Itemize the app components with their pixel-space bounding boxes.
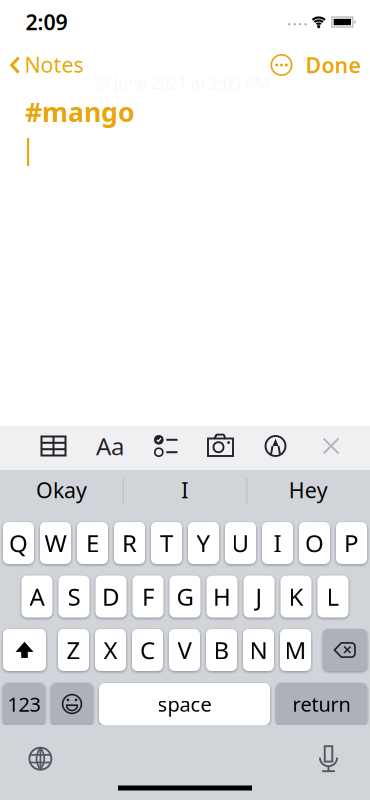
button[interactable]: Checklist xyxy=(154,435,178,457)
staticText: Notes xyxy=(24,50,83,79)
button[interactable]: space xyxy=(99,683,270,725)
staticText: H xyxy=(213,581,231,612)
button[interactable]: X xyxy=(95,629,126,671)
staticText: 2:09 xyxy=(25,8,67,36)
staticText: R xyxy=(122,527,137,559)
button[interactable]: I xyxy=(262,522,293,564)
staticText: U xyxy=(231,527,249,559)
button[interactable]: Format text xyxy=(96,430,124,462)
button[interactable]: P xyxy=(336,522,367,564)
staticText: C xyxy=(140,634,155,666)
button[interactable]: G xyxy=(169,575,200,617)
button[interactable]: T xyxy=(151,522,182,564)
staticText: X xyxy=(103,634,117,666)
staticText: Hey xyxy=(289,476,328,504)
button[interactable]: M xyxy=(280,629,311,671)
button[interactable]: Next keyboard xyxy=(28,747,52,771)
button[interactable]: Y xyxy=(188,522,219,564)
button[interactable]: L xyxy=(317,575,348,617)
staticText: I xyxy=(181,476,188,504)
button[interactable]: Done xyxy=(305,51,360,79)
button[interactable]: Z xyxy=(58,629,89,671)
button[interactable]: N xyxy=(243,629,274,671)
staticText: K xyxy=(288,581,303,612)
staticText: Y xyxy=(196,527,210,559)
button[interactable]: Q xyxy=(3,522,34,564)
button[interactable]: K xyxy=(280,575,311,617)
button[interactable]: B xyxy=(206,629,237,671)
button[interactable]: H xyxy=(206,575,237,617)
staticText: W xyxy=(44,527,66,559)
button[interactable]: E xyxy=(77,522,108,564)
button[interactable]: Dictate xyxy=(318,745,338,772)
staticText: #mango xyxy=(25,94,135,129)
button[interactable]: D xyxy=(95,575,126,617)
staticText: V xyxy=(177,634,191,666)
staticText: N xyxy=(249,634,267,666)
button[interactable]: V xyxy=(169,629,200,671)
button[interactable]: Emoji xyxy=(51,683,93,725)
staticText: S xyxy=(67,581,80,612)
staticText: L xyxy=(326,581,339,612)
staticText: Z xyxy=(66,634,80,666)
button[interactable]: U xyxy=(225,522,256,564)
staticText: B xyxy=(213,634,229,666)
button[interactable]: Markup xyxy=(264,435,286,457)
button[interactable]: Back to Notes xyxy=(6,49,78,79)
button[interactable]: Insert photo xyxy=(207,434,235,458)
button[interactable]: 123 xyxy=(3,683,45,725)
button[interactable]: W xyxy=(40,522,71,564)
staticText: P xyxy=(344,527,359,559)
button[interactable]: F xyxy=(132,575,163,617)
button[interactable]: return xyxy=(276,683,367,725)
staticText: G xyxy=(176,581,193,612)
button[interactable]: S xyxy=(58,575,89,617)
button[interactable]: I xyxy=(123,470,246,510)
staticText: J xyxy=(255,581,262,612)
button[interactable]: R xyxy=(114,522,145,564)
button[interactable]: Shift xyxy=(3,629,46,671)
button[interactable]: C xyxy=(132,629,163,671)
button[interactable]: O xyxy=(299,522,330,564)
button[interactable]: Dismiss keyboard xyxy=(322,437,339,454)
staticText: F xyxy=(142,581,154,612)
button[interactable]: J xyxy=(243,575,274,617)
staticText: D xyxy=(102,581,120,612)
button[interactable]: Insert table xyxy=(40,435,66,457)
staticText: Done xyxy=(305,51,360,79)
staticText: I xyxy=(273,527,281,559)
button[interactable]: A xyxy=(21,575,52,617)
staticText: return xyxy=(292,691,350,717)
button[interactable]: More actions xyxy=(270,54,292,76)
button[interactable]: Okay xyxy=(0,470,123,510)
staticText: Q xyxy=(9,527,28,559)
staticText: O xyxy=(305,527,324,559)
staticText: T xyxy=(160,527,173,559)
staticText: Aa xyxy=(96,430,124,462)
staticText: M xyxy=(284,634,306,666)
staticText: A xyxy=(29,581,44,612)
button[interactable]: Delete xyxy=(323,629,367,671)
button[interactable]: Hey xyxy=(246,470,370,510)
staticText: 123 xyxy=(7,691,40,717)
staticText: E xyxy=(86,527,99,559)
staticText: space xyxy=(157,691,211,717)
staticText: Okay xyxy=(36,476,87,504)
